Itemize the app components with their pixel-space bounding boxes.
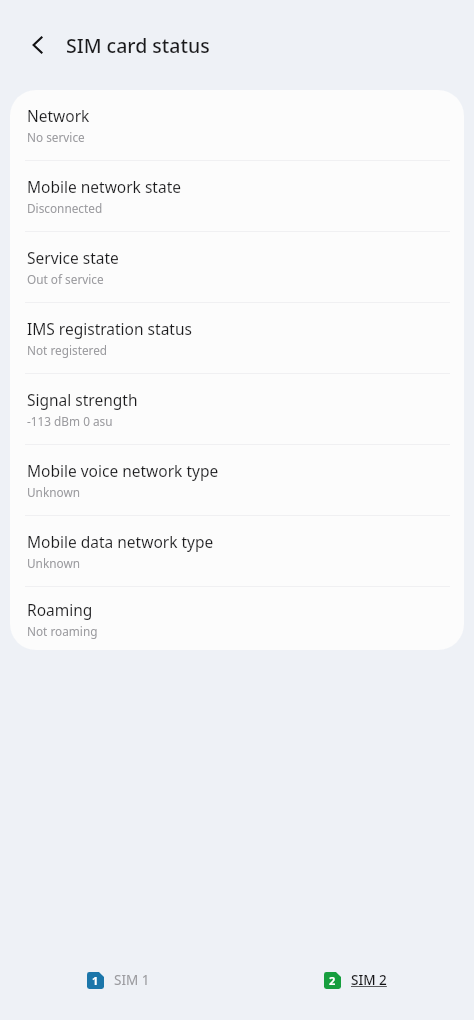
staticText: Mobile voice network type: [27, 460, 219, 481]
staticText: Mobile network state: [27, 176, 181, 197]
staticText: Disconnected: [27, 200, 103, 216]
staticText: 2: [329, 973, 336, 988]
button[interactable]: 1: [0, 940, 237, 1020]
staticText: IMS registration status: [27, 318, 192, 339]
staticText: Roaming: [27, 599, 93, 620]
button[interactable]: Service state: [10, 232, 464, 302]
staticText: Signal strength: [27, 389, 138, 410]
button[interactable]: Mobile data network type: [10, 516, 464, 586]
staticText: 1: [92, 973, 99, 988]
button[interactable]: Roaming: [10, 587, 464, 650]
button[interactable]: Mobile network state: [10, 161, 464, 231]
staticText: Network: [27, 105, 90, 126]
button[interactable]: Signal strength: [10, 374, 464, 444]
staticText: Unknown: [27, 555, 80, 571]
staticText: SIM 2: [351, 971, 387, 989]
staticText: Mobile data network type: [27, 531, 214, 552]
staticText: Not registered: [27, 342, 108, 358]
staticText: SIM 1: [114, 971, 150, 989]
staticText: Service state: [27, 247, 119, 268]
staticText: Unknown: [27, 484, 80, 500]
staticText: SIM card status: [66, 32, 210, 59]
staticText: -113 dBm 0 asu: [27, 413, 113, 429]
button[interactable]: Mobile voice network type: [10, 445, 464, 515]
button[interactable]: IMS registration status: [10, 303, 464, 373]
button[interactable]: Network: [10, 90, 464, 160]
staticText: Out of service: [27, 271, 104, 287]
button[interactable]: 2: [237, 940, 474, 1020]
staticText: Not roaming: [27, 623, 98, 639]
staticText: No service: [27, 129, 85, 145]
button[interactable]: Back: [14, 21, 62, 69]
